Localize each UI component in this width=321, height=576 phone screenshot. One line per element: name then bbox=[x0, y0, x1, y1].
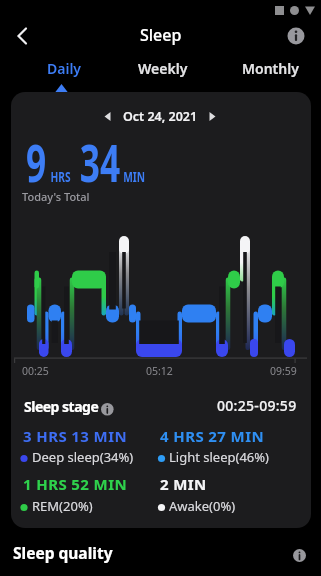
button[interactable] bbox=[287, 27, 305, 45]
staticText: Oct 24, 2021 bbox=[123, 108, 198, 125]
staticText: 34 bbox=[80, 126, 120, 197]
staticText: Sleep quality bbox=[13, 542, 113, 563]
staticText: MIN bbox=[123, 166, 146, 186]
staticText: Sleep bbox=[140, 24, 182, 46]
staticText: Today's Total bbox=[22, 189, 90, 204]
button[interactable]: Daily bbox=[47, 59, 82, 78]
button[interactable]: Sleep quality bbox=[0, 538, 321, 576]
staticText: 4 HRS 27 MIN bbox=[160, 426, 264, 446]
staticText: 00:25 bbox=[22, 364, 49, 378]
staticText: Light sleep(46%) bbox=[169, 448, 269, 466]
staticText: Awake(0%) bbox=[169, 497, 236, 515]
button[interactable]: Weekly bbox=[138, 59, 188, 78]
button[interactable] bbox=[8, 24, 36, 50]
staticText: 09:59 bbox=[270, 364, 297, 378]
staticText: REM(20%) bbox=[32, 497, 93, 515]
button[interactable]: Oct 24, 2021 bbox=[95, 104, 225, 128]
staticText: HRS bbox=[50, 166, 71, 186]
staticText: Weekly bbox=[138, 59, 188, 78]
staticText: Monthly bbox=[242, 59, 299, 78]
staticText: 1 HRS 52 MIN bbox=[23, 474, 127, 494]
staticText: Daily bbox=[47, 59, 82, 78]
staticText: 00:25-09:59 bbox=[217, 396, 297, 415]
staticText: 05:12 bbox=[146, 364, 173, 378]
staticText: Deep sleep(34%) bbox=[32, 448, 134, 466]
button[interactable]: Monthly bbox=[242, 59, 299, 78]
button[interactable] bbox=[293, 549, 306, 562]
staticText: 2 MIN bbox=[160, 474, 207, 494]
button[interactable] bbox=[101, 403, 114, 416]
staticText: Sleep stage bbox=[24, 397, 99, 416]
staticText: 9 bbox=[26, 126, 46, 197]
staticText: 3 HRS 13 MIN bbox=[23, 426, 127, 446]
